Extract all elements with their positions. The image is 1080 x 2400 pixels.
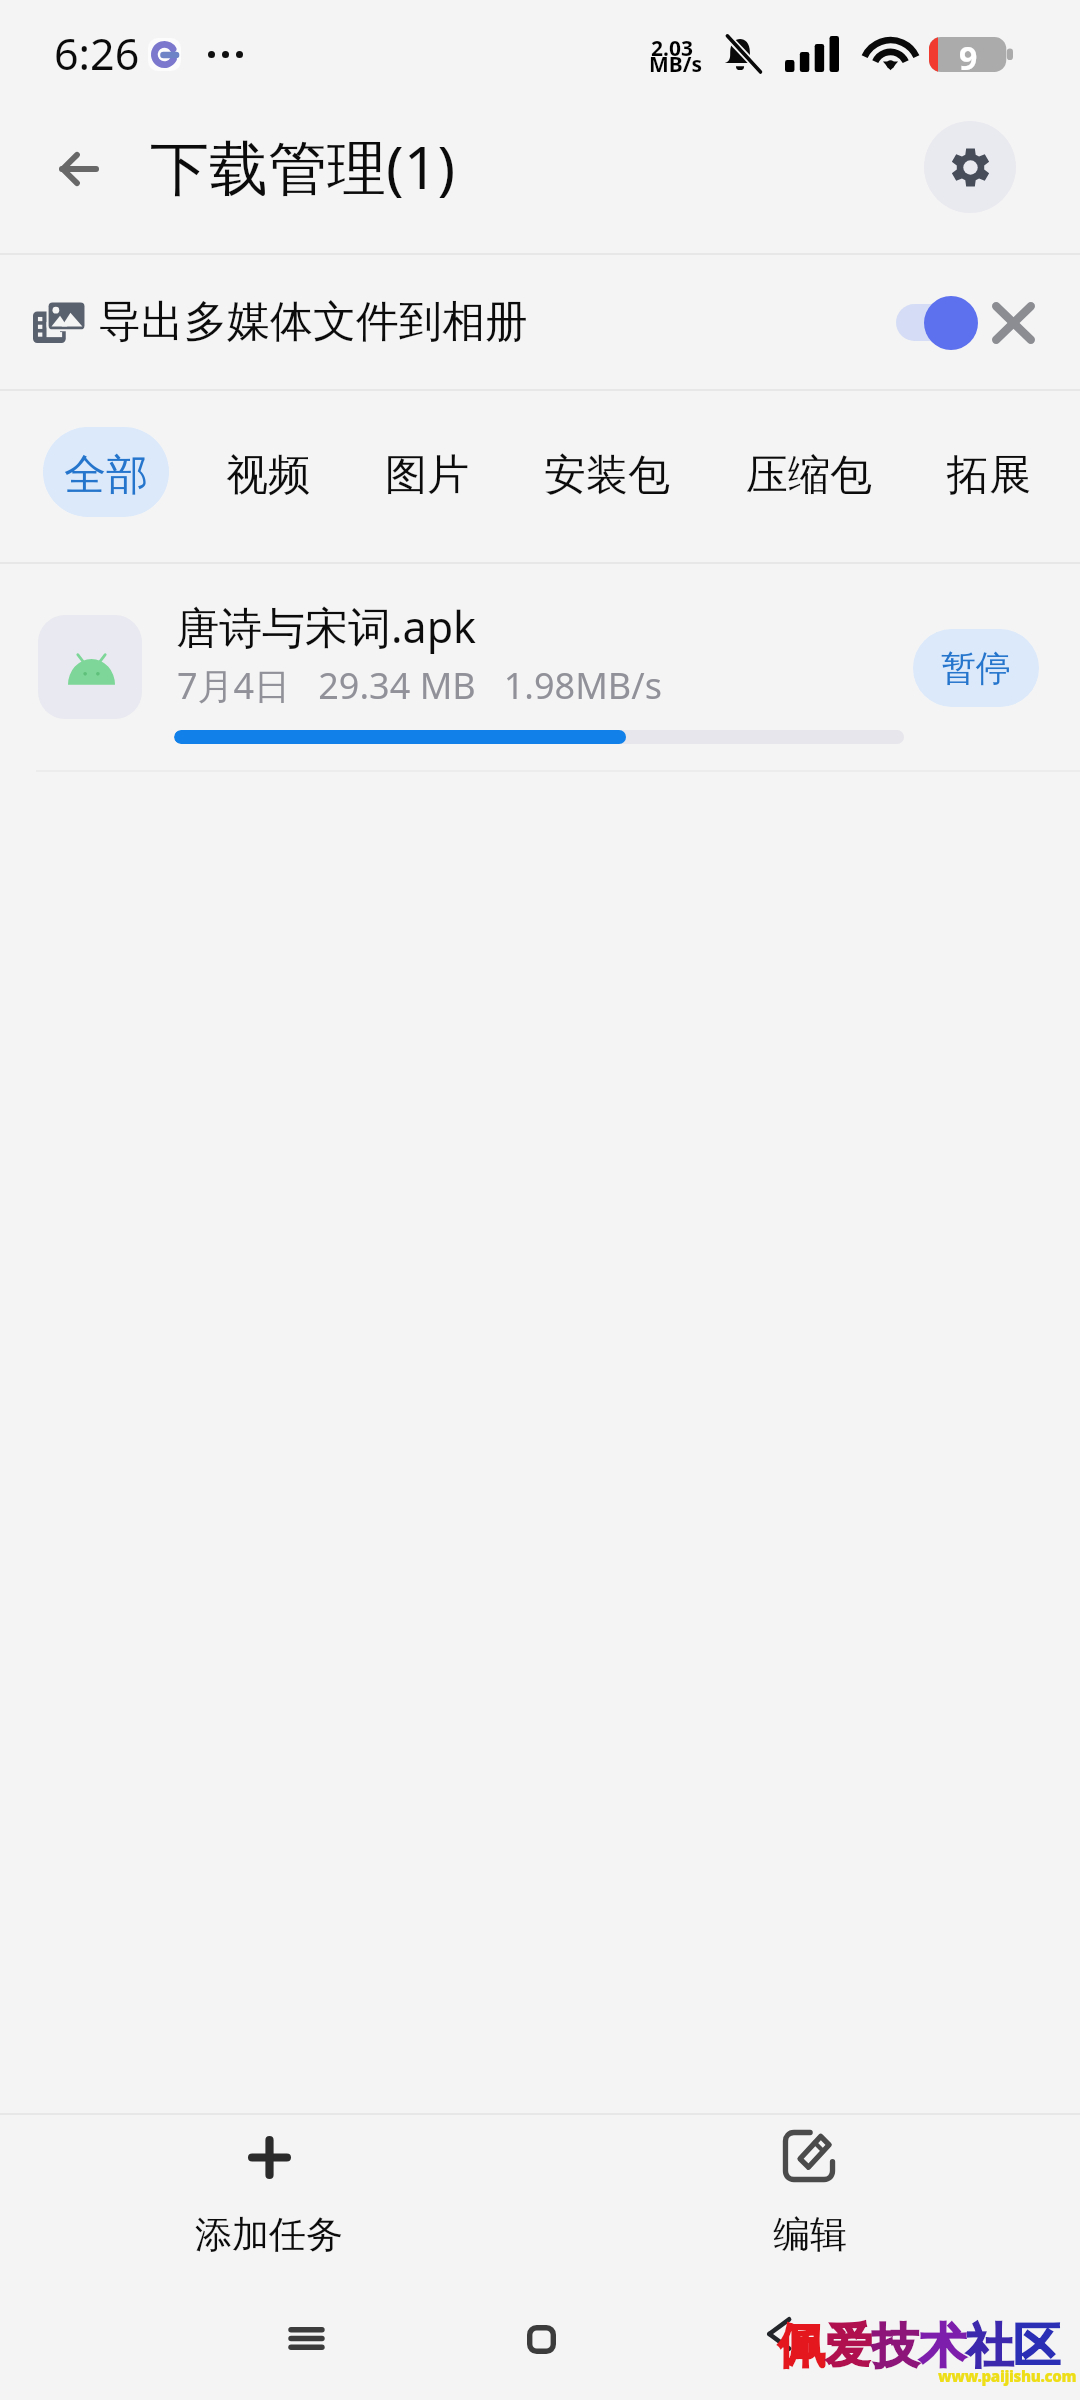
staticText: MB/s — [649, 50, 703, 79]
staticText: 9 — [959, 36, 978, 71]
button[interactable]: 暂停 — [913, 629, 1039, 707]
button[interactable]: 拓展 — [943, 427, 1035, 517]
button[interactable]: 编辑 — [540, 2115, 1080, 2300]
button[interactable]: Back — [43, 133, 115, 205]
button[interactable]: 添加任务 — [0, 2115, 540, 2300]
staticText: 压缩包 — [746, 449, 872, 502]
staticText: 佩 — [778, 2317, 825, 2376]
staticText: www.paijishu.com — [938, 2366, 1077, 2386]
staticText: 唐诗与宋词.apk — [176, 597, 477, 656]
button[interactable]: 图片 — [381, 427, 473, 517]
button[interactable]: Close — [986, 296, 1040, 350]
staticText: 6:26 — [54, 24, 140, 83]
staticText: 社 — [966, 2317, 1013, 2376]
staticText: 全部 — [64, 449, 148, 502]
staticText: 添加任务 — [195, 2211, 343, 2258]
button[interactable]: 全部 — [43, 427, 169, 517]
staticText: 导出多媒体文件到相册 — [98, 295, 528, 349]
staticText: 图片 — [385, 449, 469, 502]
button[interactable]: 安装包 — [540, 427, 674, 517]
button[interactable]: Settings — [924, 121, 1016, 213]
staticText: 拓展 — [947, 449, 1031, 502]
staticText: 7月4日 29.34 MB 1.98MB/s — [177, 661, 662, 710]
staticText: 爱 — [825, 2317, 872, 2376]
button[interactable]: 压缩包 — [742, 427, 876, 517]
button[interactable]: 视频 — [222, 427, 314, 517]
staticText: 下载管理(1) — [150, 126, 456, 207]
staticText: 区 — [1013, 2317, 1060, 2376]
staticText: 2.03 — [651, 34, 693, 63]
staticText: 暂停 — [941, 646, 1011, 690]
button[interactable]: Toggle export to album — [890, 290, 986, 356]
staticText: 安装包 — [544, 449, 670, 502]
staticText: 技 — [872, 2317, 919, 2376]
staticText: 编辑 — [773, 2211, 847, 2258]
staticText: 术 — [919, 2317, 966, 2376]
button[interactable]: Recent apps — [250, 2300, 362, 2390]
button[interactable]: 唐诗与宋词.apk — [0, 564, 1080, 770]
staticText: 视频 — [226, 449, 310, 502]
button[interactable]: Home — [486, 2300, 598, 2390]
